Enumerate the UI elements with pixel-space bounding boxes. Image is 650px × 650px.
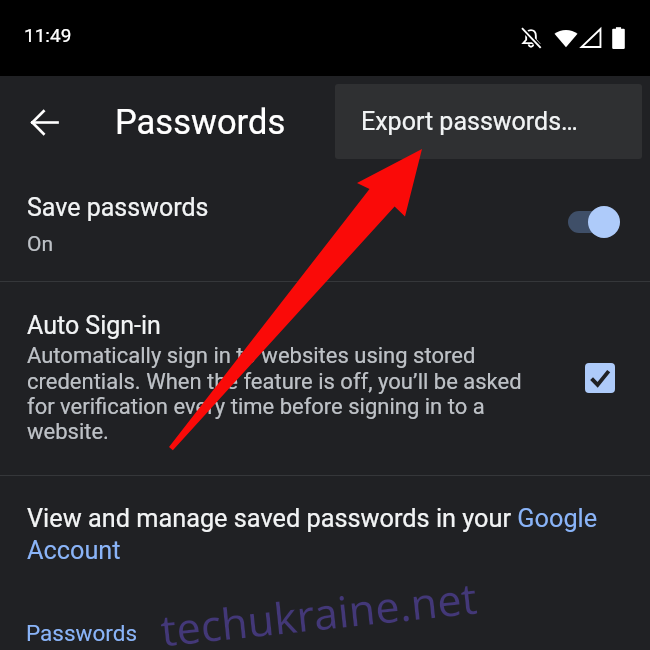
button[interactable]: Back: [18, 96, 70, 148]
button[interactable]: Save passwords: [0, 168, 650, 281]
staticText: Passwords: [115, 102, 286, 142]
staticText: On: [27, 232, 54, 257]
button[interactable]: Passwords: [0, 604, 650, 650]
button[interactable]: Auto sign-in checkbox: [570, 348, 630, 408]
button[interactable]: Export passwords…: [335, 84, 642, 159]
staticText: 11:49: [24, 24, 72, 46]
staticText: Save passwords: [27, 193, 209, 222]
staticText: techukraine.net: [158, 567, 480, 650]
staticText: Export passwords…: [361, 107, 578, 136]
staticText: Automatically sign in to websites using …: [27, 343, 532, 444]
staticText: View and manage saved passwords in your …: [27, 504, 611, 565]
button[interactable]: View and manage saved passwords in your …: [0, 476, 650, 576]
staticText: Passwords: [26, 620, 137, 646]
staticText: Auto Sign-in: [27, 311, 161, 340]
button[interactable]: Auto Sign-in: [0, 282, 650, 475]
